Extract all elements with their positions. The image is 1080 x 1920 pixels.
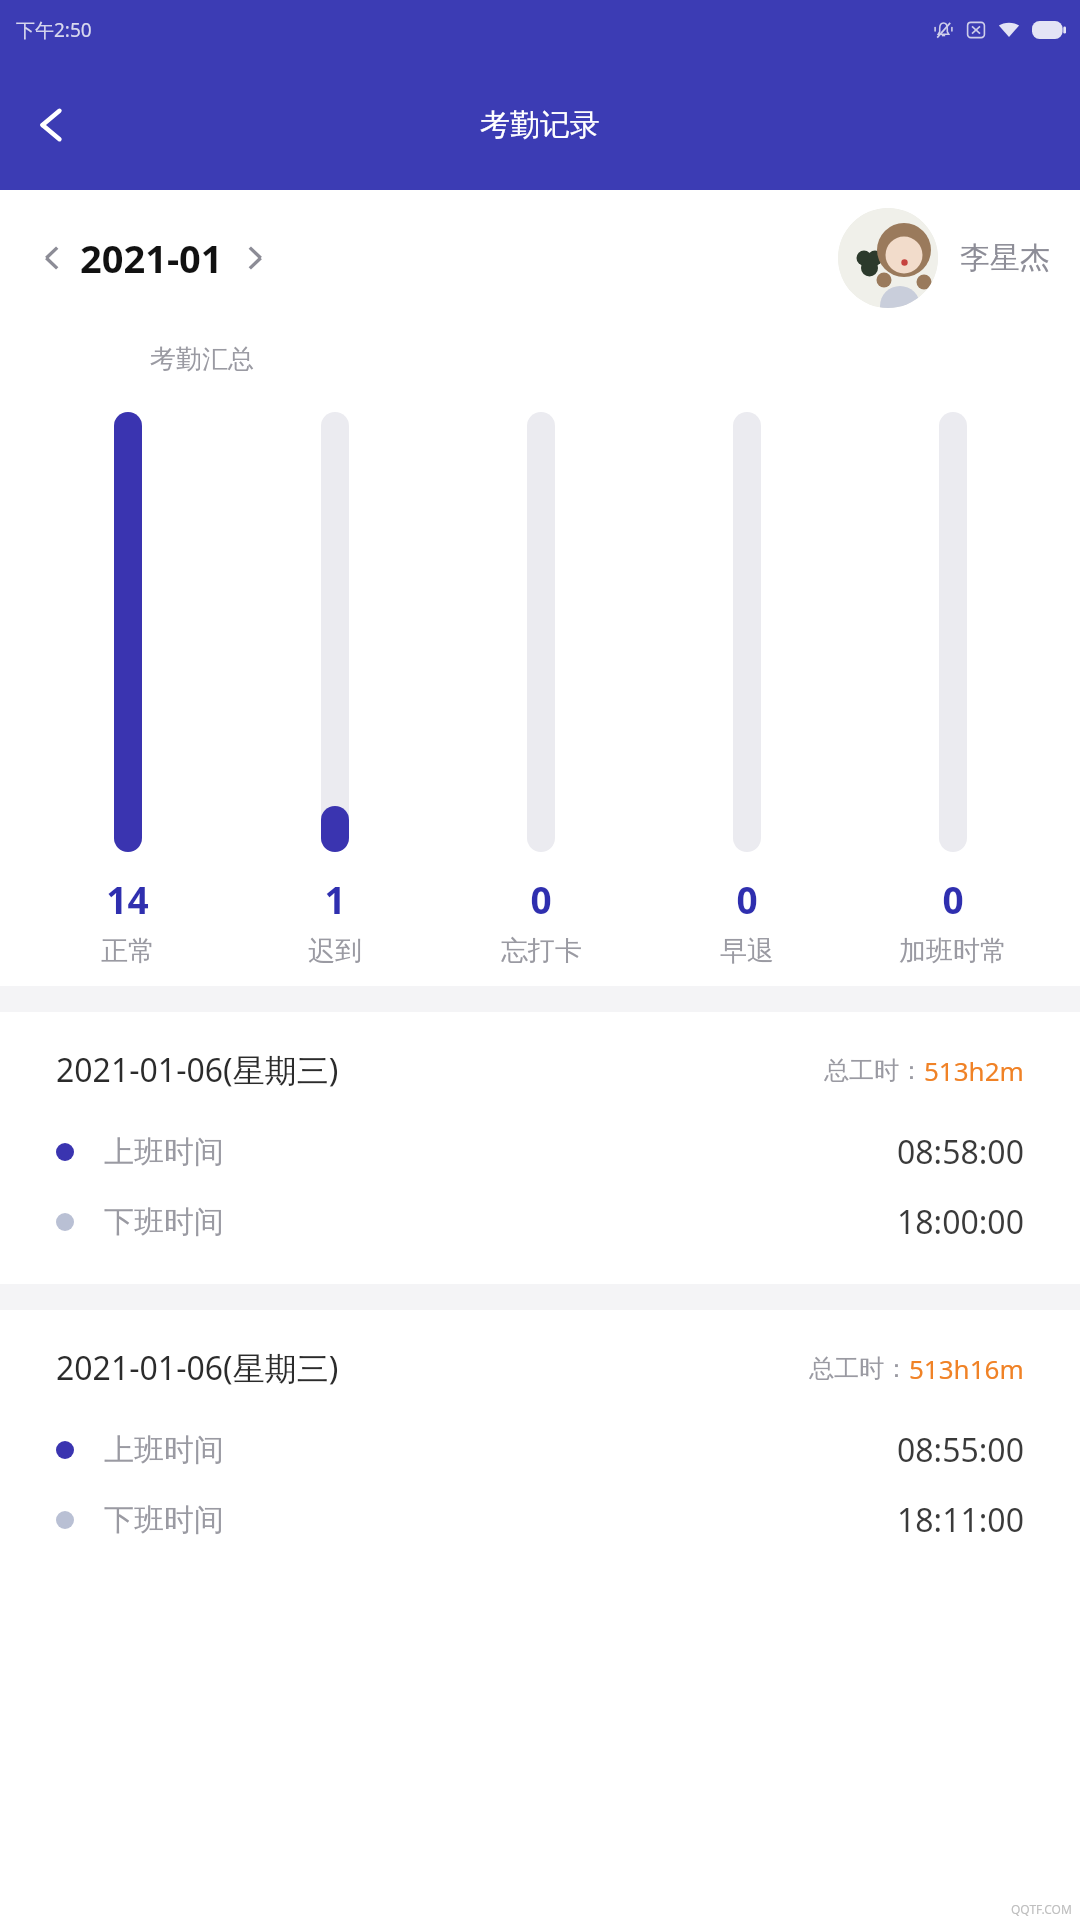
button[interactable]: Back [22, 95, 82, 155]
staticText: 0 [942, 874, 964, 924]
staticText: 考勤记录 [480, 106, 600, 144]
staticText: 下班时间 [104, 1203, 224, 1241]
staticText: QQTF.COM [1011, 1901, 1072, 1917]
staticText: 迟到 [308, 934, 362, 968]
staticText: 正常 [101, 934, 155, 968]
staticText: 0 [530, 874, 552, 924]
staticText: 早退 [720, 934, 774, 968]
staticText: 513h16m [909, 1351, 1024, 1386]
staticText: 下班时间 [104, 1501, 224, 1539]
staticText: 08:58:00 [897, 1130, 1024, 1174]
button[interactable]: Previous month [30, 236, 74, 280]
button[interactable]: Next month [233, 236, 277, 280]
button[interactable]: 2021-01-06(星期三) [0, 1310, 1080, 1582]
staticText: 08:55:00 [897, 1428, 1024, 1472]
button[interactable]: 0 [850, 412, 1056, 968]
staticText: 加班时常 [899, 934, 1007, 968]
staticText: 2021-01-06(星期三) [56, 1346, 339, 1390]
staticText: 2021-01-06(星期三) [56, 1048, 339, 1092]
staticText: 上班时间 [104, 1431, 224, 1469]
button[interactable]: 14 [24, 412, 231, 968]
staticText: 考勤汇总 [150, 343, 254, 376]
staticText: 总工时： [809, 1353, 909, 1384]
staticText: 1 [324, 874, 346, 924]
staticText: 18:11:00 [897, 1498, 1024, 1542]
staticText: 总工时： [824, 1055, 924, 1086]
button[interactable]: 0 [644, 412, 850, 968]
button[interactable]: 李星杰 [838, 208, 1050, 308]
staticText: 李星杰 [960, 239, 1050, 277]
button[interactable]: 0 [438, 412, 644, 968]
staticText: 上班时间 [104, 1133, 224, 1171]
staticText: 14 [106, 874, 149, 924]
button[interactable]: 2021-01-06(星期三) [0, 1012, 1080, 1284]
staticText: 下午2:50 [16, 17, 92, 43]
staticText: 18:00:00 [897, 1200, 1024, 1244]
staticText: 2021-01 [80, 232, 223, 284]
staticText: 513h2m [924, 1053, 1024, 1088]
staticText: 忘打卡 [501, 934, 582, 968]
button[interactable]: 1 [231, 412, 438, 968]
staticText: 0 [736, 874, 758, 924]
